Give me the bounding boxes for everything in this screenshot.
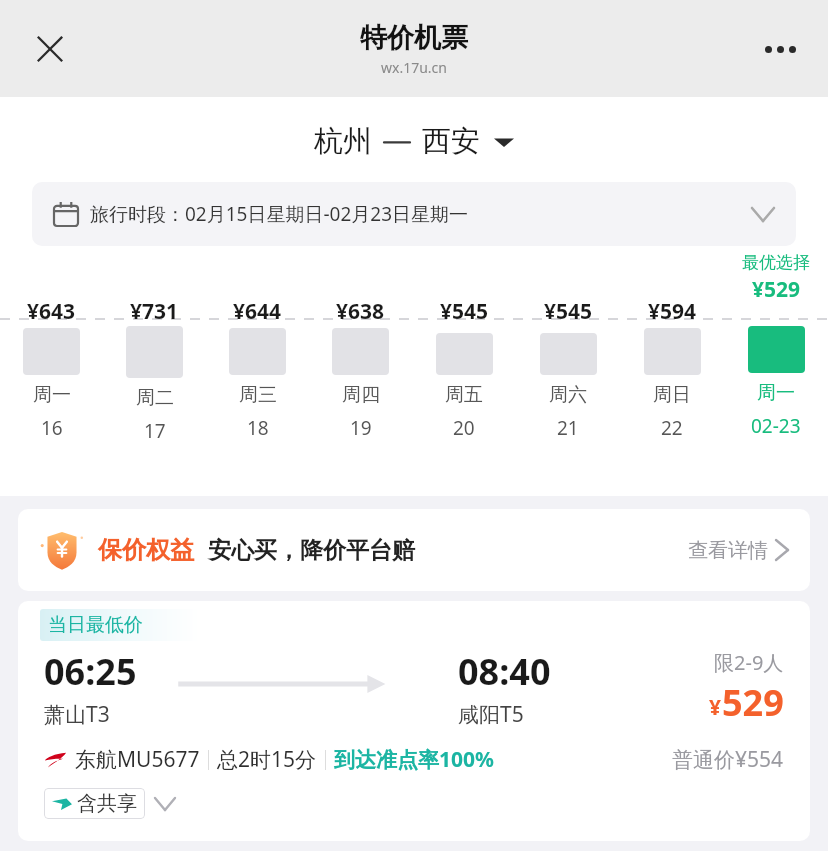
- button[interactable]: ¥545: [412, 274, 516, 449]
- button[interactable]: More options: [752, 21, 808, 77]
- staticText: ¥638: [336, 297, 385, 326]
- staticText: 最优选择: [742, 252, 810, 273]
- staticText: 08:40: [458, 647, 551, 696]
- staticText: 萧山T3: [44, 700, 110, 729]
- button[interactable]: ¥644: [206, 274, 309, 449]
- staticText: 17: [144, 418, 166, 444]
- staticText: 529: [722, 678, 784, 727]
- staticText: 周日: [653, 383, 691, 407]
- staticText: 特价机票: [360, 21, 468, 55]
- button[interactable]: 当日最低价: [18, 601, 810, 841]
- staticText: 周五: [445, 383, 483, 407]
- button[interactable]: 保价权益: [18, 509, 810, 591]
- staticText: 周一: [33, 383, 71, 407]
- staticText: 总2时15分: [217, 745, 317, 774]
- staticText: 到达准点率100%: [334, 745, 494, 774]
- staticText: 普通价¥554: [672, 745, 784, 774]
- staticText: 周一: [757, 381, 795, 405]
- staticText: 21: [557, 415, 579, 441]
- staticText: 查看详情: [688, 538, 768, 563]
- staticText: 西安: [422, 123, 480, 160]
- button[interactable]: 含共享: [44, 788, 145, 819]
- button[interactable]: ¥594: [620, 274, 724, 449]
- staticText: 19: [350, 415, 372, 441]
- staticText: 06:25: [44, 647, 137, 696]
- staticText: ¥731: [130, 297, 179, 326]
- staticText: 02-23: [751, 413, 801, 439]
- staticText: ¥594: [648, 297, 697, 326]
- staticText: 当日最低价: [48, 613, 143, 637]
- button[interactable]: ¥643: [0, 274, 103, 449]
- staticText: 保价权益: [98, 535, 194, 565]
- button[interactable]: 旅行时段：02月15日星期日-02月23日星期一: [32, 182, 796, 246]
- staticText: 周二: [136, 386, 174, 410]
- staticText: 咸阳T5: [458, 700, 524, 729]
- staticText: 周六: [549, 383, 587, 407]
- staticText: wx.17u.cn: [381, 58, 447, 77]
- staticText: ¥643: [27, 297, 76, 326]
- staticText: 杭州: [314, 123, 372, 160]
- button[interactable]: ¥731: [103, 274, 206, 449]
- button[interactable]: ¥545: [516, 274, 620, 449]
- staticText: 安心买，降价平台赔: [208, 536, 415, 565]
- staticText: ¥529: [752, 275, 801, 304]
- button[interactable]: 杭州: [0, 123, 828, 160]
- staticText: ¥: [709, 693, 722, 722]
- staticText: 18: [247, 415, 269, 441]
- staticText: 22: [661, 415, 683, 441]
- staticText: 含共享: [77, 791, 137, 816]
- button[interactable]: Close: [22, 21, 78, 77]
- staticText: 周三: [239, 383, 277, 407]
- staticText: 东航MU5677: [75, 745, 200, 774]
- button[interactable]: 最优选择: [724, 274, 828, 449]
- staticText: ¥644: [233, 297, 282, 326]
- staticText: 16: [41, 415, 63, 441]
- staticText: ¥545: [440, 297, 489, 326]
- staticText: ¥545: [544, 297, 593, 326]
- staticText: 旅行时段：02月15日星期日-02月23日星期一: [90, 201, 469, 227]
- staticText: 限2-9人: [714, 649, 784, 676]
- staticText: 20: [453, 415, 475, 441]
- staticText: 周四: [342, 383, 380, 407]
- button[interactable]: ¥638: [309, 274, 412, 449]
